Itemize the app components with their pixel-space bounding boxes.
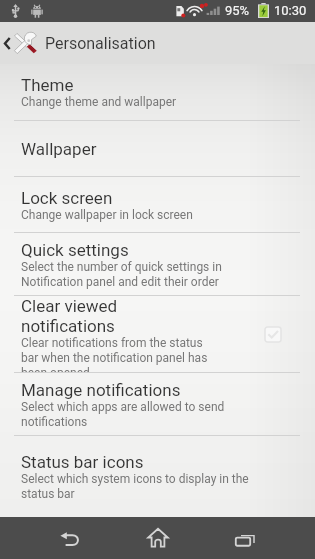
button[interactable]: Theme — [0, 64, 315, 120]
staticText: Lock screen — [21, 188, 113, 208]
staticText: 95% — [225, 3, 250, 18]
staticText: Change theme and wallpaper — [21, 95, 177, 109]
button[interactable]: Status bar icons — [0, 436, 315, 517]
button[interactable]: Recent apps — [210, 517, 280, 559]
staticText: Select the number of quick settings in N… — [21, 260, 261, 289]
button[interactable]: Back — [26, 517, 96, 559]
other: Back — [2, 36, 13, 51]
button[interactable]: Back — [0, 22, 156, 64]
staticText: Clear viewed notifications — [21, 296, 210, 336]
staticText: Select which apps are allowed to send no… — [21, 400, 261, 429]
staticText: 10:30 — [274, 3, 307, 18]
staticText: Manage notifications — [21, 380, 181, 400]
button[interactable]: Wallpaper — [0, 121, 315, 176]
button[interactable]: Clear viewed notifications — [0, 296, 315, 372]
staticText: Select which system icons to display in … — [21, 472, 261, 501]
button[interactable]: Home — [123, 517, 193, 559]
staticText: Personalisation — [45, 34, 156, 53]
button[interactable]: Manage notifications — [0, 373, 315, 435]
button[interactable]: Quick settings — [0, 233, 315, 295]
staticText: Theme — [21, 75, 74, 95]
staticText: Quick settings — [21, 240, 129, 260]
button[interactable]: Lock screen — [0, 177, 315, 232]
button[interactable]: Clear viewed notifications toggle — [264, 325, 282, 343]
staticText: Status bar icons — [21, 452, 144, 472]
staticText: Change wallpaper in lock screen — [21, 208, 193, 222]
staticText: Clear notifications from the status bar … — [21, 336, 210, 372]
staticText: Wallpaper — [21, 139, 97, 159]
